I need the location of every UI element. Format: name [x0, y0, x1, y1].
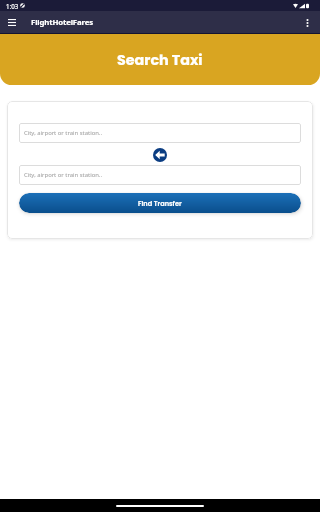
- staticText: FlightHotelFares: [31, 17, 93, 28]
- button[interactable]: Open navigation menu: [0, 11, 24, 34]
- staticText: Find Transfer: [138, 199, 182, 208]
- staticText: City, airport or train station..: [24, 129, 103, 137]
- button[interactable]: City, airport or train station..: [19, 165, 301, 185]
- staticText: 1:03: [6, 2, 19, 10]
- button[interactable]: City, airport or train station..: [19, 123, 301, 143]
- button[interactable]: Find Transfer: [19, 193, 301, 213]
- button[interactable]: Swap pickup and drop off: [153, 148, 167, 162]
- button[interactable]: More options: [294, 11, 320, 34]
- staticText: City, airport or train station..: [24, 171, 103, 179]
- staticText: Search Taxi: [117, 50, 203, 70]
